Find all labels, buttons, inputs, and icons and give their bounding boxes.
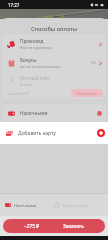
staticText: Бонусы bbox=[20, 57, 37, 63]
button[interactable]: Наличными bbox=[2, 104, 106, 122]
button[interactable]: Бонусы bbox=[2, 54, 106, 72]
staticText: 17:27 bbox=[8, 2, 20, 8]
staticText: Ввести промокод bbox=[20, 45, 52, 50]
button[interactable]: Комментарий bbox=[52, 200, 89, 211]
button[interactable]: Промокод bbox=[2, 35, 106, 53]
staticText: Заказать bbox=[63, 223, 84, 230]
button[interactable]: Добавить карту bbox=[0, 122, 108, 144]
button[interactable]: Пополнить bbox=[71, 89, 103, 97]
staticText: на счете 0 ₽ bbox=[7, 91, 29, 96]
staticText: Пополнить bbox=[76, 91, 98, 96]
button[interactable]: Личный счёт bbox=[2, 72, 106, 90]
staticText: 55 bbox=[91, 60, 96, 66]
button[interactable]: Наличными bbox=[3, 199, 38, 211]
button[interactable]: Add card bbox=[97, 129, 105, 137]
staticText: Промокод bbox=[20, 38, 44, 44]
staticText: ~275 ₽ bbox=[24, 223, 40, 230]
staticText: Комментарий bbox=[62, 203, 88, 208]
staticText: Наличными bbox=[20, 110, 48, 116]
staticText: Яндекс bbox=[20, 82, 33, 87]
staticText: Способы оплаты bbox=[0, 25, 108, 33]
staticText: Наличными bbox=[14, 203, 37, 208]
staticText: Добавить карту bbox=[18, 130, 56, 137]
staticText: нет их использования bbox=[20, 64, 60, 69]
staticText: Личный счёт bbox=[20, 75, 50, 81]
button[interactable]: ~275 ₽ bbox=[3, 219, 105, 233]
